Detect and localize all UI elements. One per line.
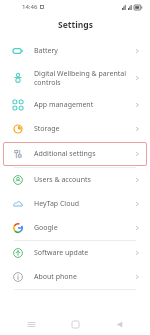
staticText: Battery [34,46,131,56]
staticText: Digital Wellbeing & parental controls [34,69,131,87]
button[interactable]: About phone [0,265,150,289]
button[interactable]: Google [0,216,150,240]
staticText: App management [34,100,131,110]
staticText: Users & accounts [34,175,131,185]
button[interactable]: Battery [0,39,150,63]
button[interactable]: Home [62,313,88,335]
button[interactable]: Users & accounts [0,168,150,192]
staticText: Storage [34,124,131,134]
staticText: Settings [58,19,93,31]
button[interactable]: Digital Wellbeing & parental controls [0,63,150,93]
button[interactable]: App management [0,93,150,117]
staticText: 14:46 [22,3,38,11]
staticText: Software update [34,248,131,258]
button[interactable]: Additional settings [3,142,147,166]
staticText: HeyTap Cloud [34,199,131,209]
staticText: Additional settings [34,149,135,159]
button[interactable]: HeyTap Cloud [0,192,150,216]
button[interactable]: Software update [0,241,150,265]
button[interactable]: Storage [0,117,150,141]
button[interactable]: Recent apps [18,313,44,335]
button[interactable]: Back [106,313,132,335]
staticText: About phone [34,272,131,282]
staticText: Google [34,223,131,233]
